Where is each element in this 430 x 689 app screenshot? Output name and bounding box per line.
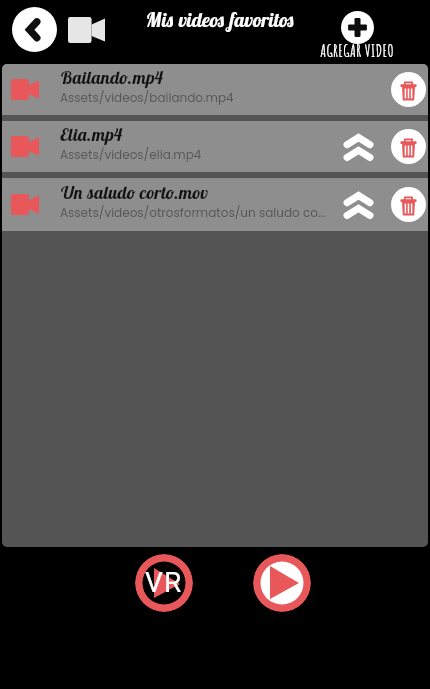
button[interactable]: Record video xyxy=(68,17,105,43)
staticText: VR xyxy=(145,566,183,599)
button[interactable]: AGREGAR VIDEO xyxy=(316,8,398,41)
button[interactable]: Move up xyxy=(326,125,391,169)
button[interactable]: Elia.mp4 xyxy=(2,121,428,172)
button[interactable]: Un saludo corto.mov xyxy=(2,178,428,231)
staticText: Assets/videos/bailando.mp4 xyxy=(60,89,234,106)
button[interactable]: Back xyxy=(12,7,57,52)
staticText: Assets/videos/elia.mp4 xyxy=(60,146,202,163)
staticText: Bailando.mp4 xyxy=(60,66,164,89)
staticText: AGREGAR VIDEO xyxy=(320,40,394,61)
button[interactable]: Play in VR mode xyxy=(135,554,193,612)
staticText: Assets/videos/otrosformatos/un saludo co… xyxy=(60,204,326,221)
button[interactable]: Play xyxy=(253,554,311,612)
button[interactable]: Move up xyxy=(326,183,391,227)
button[interactable]: Delete xyxy=(391,187,426,222)
staticText: Un saludo corto.mov xyxy=(60,181,208,204)
staticText: Elia.mp4 xyxy=(60,123,123,146)
staticText: Mis videos favoritos xyxy=(146,7,295,31)
button[interactable]: Delete xyxy=(391,72,426,107)
button[interactable]: Bailando.mp4 xyxy=(2,64,428,115)
button[interactable]: Delete xyxy=(391,129,426,164)
